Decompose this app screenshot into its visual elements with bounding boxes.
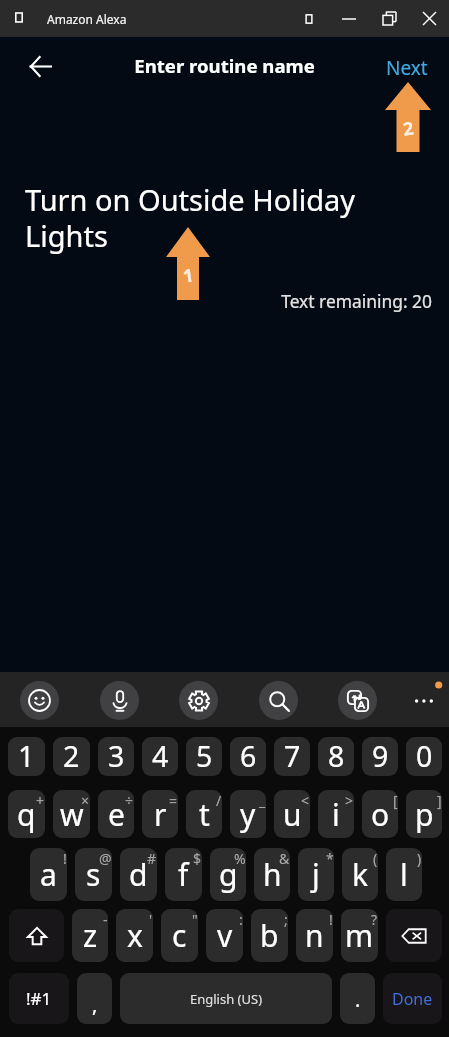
staticText: 8 [328, 737, 345, 776]
button[interactable]: r [142, 790, 178, 838]
button[interactable]: Backspace [386, 909, 442, 962]
staticText: - [103, 910, 108, 929]
button[interactable]: e [98, 790, 134, 838]
button[interactable]: 9 [362, 737, 398, 776]
button[interactable]: h [254, 848, 290, 901]
staticText: $ [193, 849, 202, 868]
button[interactable]: k [342, 848, 378, 901]
staticText: j [312, 854, 320, 895]
button[interactable]: a [30, 848, 67, 901]
button[interactable]: o [362, 790, 398, 838]
staticText: 9 [372, 737, 389, 776]
staticText: ) [417, 849, 422, 868]
button[interactable]: d [120, 848, 157, 901]
button[interactable]: 2 [53, 737, 90, 776]
button[interactable]: l [386, 848, 422, 901]
button[interactable]: Translate [338, 681, 377, 720]
button[interactable]: Maximize [369, 0, 409, 37]
staticText: 3 [108, 737, 125, 776]
staticText: e [108, 794, 125, 835]
staticText: m [345, 915, 374, 956]
button[interactable]: z [72, 909, 108, 962]
button[interactable]: 0 [406, 737, 442, 776]
staticText: ! [63, 849, 67, 868]
button[interactable]: 3 [98, 737, 134, 776]
staticText: Text remaining: 20 [0, 289, 432, 313]
button[interactable]: Shift [9, 909, 64, 962]
staticText: i [332, 794, 340, 835]
button[interactable]: u [274, 790, 310, 838]
button[interactable]: Voice input [100, 681, 139, 720]
staticText: ÷ [125, 791, 134, 810]
button[interactable]: c [161, 909, 198, 962]
staticText: 2 [63, 737, 80, 776]
button[interactable]: 1 [8, 737, 45, 776]
button[interactable]: Emoji [20, 681, 59, 720]
staticText: !#1 [26, 987, 52, 1010]
staticText: l [400, 854, 408, 895]
staticText: ? [371, 910, 378, 929]
button[interactable]: 8 [318, 737, 354, 776]
button[interactable]: p [406, 790, 442, 838]
staticText: h [263, 854, 282, 895]
staticText: * [326, 849, 334, 868]
staticText: + [36, 791, 45, 810]
button[interactable]: f [165, 848, 202, 901]
button[interactable]: x [116, 909, 153, 962]
staticText: s [86, 854, 101, 895]
button[interactable]: 4 [142, 737, 178, 776]
staticText: ( [373, 849, 378, 868]
button[interactable]: i [318, 790, 354, 838]
button[interactable]: q [8, 790, 45, 838]
staticText: p [415, 794, 434, 835]
staticText: y [240, 794, 256, 835]
staticText: ] [437, 791, 442, 810]
button[interactable]: j [298, 848, 334, 901]
button[interactable]: 6 [230, 737, 266, 776]
button[interactable]: m [341, 909, 378, 962]
staticText: w [60, 794, 84, 835]
button[interactable]: Next [386, 55, 428, 81]
staticText: t [199, 794, 210, 835]
staticText: 2 [401, 115, 416, 142]
button[interactable]: 7 [274, 737, 310, 776]
button[interactable]: y [230, 790, 266, 838]
staticText: × [81, 791, 90, 810]
button[interactable]: s [75, 848, 112, 901]
staticText: : [239, 910, 243, 929]
staticText: u [283, 794, 302, 835]
staticText: z [83, 915, 98, 956]
staticText: English (US) [190, 990, 263, 1008]
staticText: = [169, 791, 178, 810]
button[interactable]: . [340, 973, 375, 1024]
button[interactable]: 5 [186, 737, 222, 776]
button[interactable]: Settings [179, 681, 218, 720]
staticText: Enter routine name [0, 53, 449, 78]
button[interactable]: , [77, 973, 112, 1024]
button[interactable]: More options [406, 681, 444, 719]
button[interactable]: Close [409, 0, 449, 37]
button[interactable]: w [53, 790, 90, 838]
button[interactable]: Back [18, 44, 62, 88]
staticText: . [355, 986, 361, 1013]
staticText: g [219, 854, 238, 895]
button[interactable]: !#1 [9, 973, 69, 1024]
staticText: > [345, 791, 354, 810]
button[interactable]: Done [383, 973, 442, 1024]
staticText: c [172, 915, 187, 956]
staticText: x [127, 915, 143, 956]
button[interactable]: English (US) [120, 973, 332, 1024]
button[interactable]: Device mode [289, 0, 329, 37]
staticText: @ [99, 849, 112, 868]
button[interactable]: Search [259, 681, 298, 720]
button[interactable]: g [210, 848, 246, 901]
button[interactable]: Minimize [329, 0, 369, 37]
staticText: [ [393, 791, 398, 810]
button[interactable]: b [251, 909, 288, 962]
staticText: ! [329, 910, 333, 929]
button[interactable]: v [206, 909, 243, 962]
button[interactable]: t [186, 790, 222, 838]
staticText: q [17, 794, 36, 835]
button[interactable]: n [296, 909, 333, 962]
staticText: 5 [196, 737, 213, 776]
